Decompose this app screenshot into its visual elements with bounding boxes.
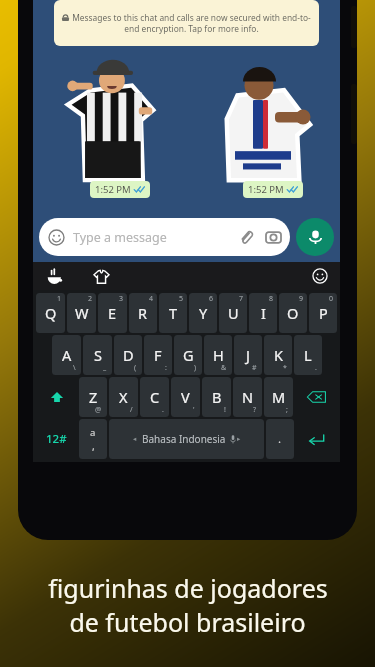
staticText: Y — [199, 303, 208, 323]
staticText: 1:52 PM — [248, 183, 284, 196]
button[interactable]: Enter — [296, 419, 337, 459]
staticText: 1:52 PM — [95, 183, 131, 196]
button[interactable]: S — [83, 335, 112, 375]
staticText: G — [183, 345, 194, 365]
staticText: / — [130, 405, 133, 415]
button[interactable]: W — [67, 293, 96, 333]
staticText: 6 — [209, 294, 214, 304]
staticText: I — [261, 303, 266, 323]
staticText: T — [169, 303, 178, 323]
button[interactable]: M — [264, 377, 293, 417]
staticText: a — [90, 426, 96, 439]
button[interactable]: a — [79, 419, 107, 459]
button[interactable]: I — [249, 293, 277, 333]
staticText: M — [272, 387, 286, 407]
staticText: @ — [95, 405, 102, 415]
button[interactable]: G — [174, 335, 202, 375]
button[interactable]: H — [204, 335, 232, 375]
button[interactable]: C — [140, 377, 169, 417]
staticText: H — [213, 345, 224, 365]
staticText: ! — [224, 405, 226, 415]
staticText: ? — [253, 405, 257, 415]
staticText: 3 — [119, 294, 124, 304]
button[interactable]: U — [219, 293, 247, 333]
staticText: : — [165, 363, 167, 373]
staticText: 2 — [88, 294, 93, 304]
staticText: & — [221, 363, 227, 373]
button[interactable]: Type a message — [39, 218, 290, 256]
button[interactable]: . — [266, 419, 294, 459]
staticText: X — [119, 387, 128, 407]
button[interactable]: F — [144, 335, 172, 375]
staticText: L — [304, 345, 312, 365]
staticText: K — [274, 345, 283, 365]
staticText: ; — [286, 405, 288, 415]
staticText: ( — [134, 363, 137, 373]
staticText: Q — [45, 303, 57, 323]
button[interactable]: Recent stickers — [33, 262, 77, 290]
staticText: J — [246, 345, 250, 365]
button[interactable]: B — [202, 377, 231, 417]
staticText: S — [94, 345, 102, 365]
staticText: C — [150, 387, 160, 407]
button[interactable]: P — [309, 293, 337, 333]
staticText: # — [252, 363, 257, 373]
staticText: O — [287, 303, 299, 323]
button[interactable]: A — [52, 335, 81, 375]
staticText: 9 — [299, 294, 304, 304]
staticText: N — [242, 387, 254, 407]
staticText: R — [138, 303, 148, 323]
button[interactable]: V — [171, 377, 200, 417]
staticText: de futebol brasileiro — [69, 605, 306, 639]
staticText: 1 — [57, 294, 62, 304]
staticText: D — [123, 345, 134, 365]
button[interactable]: D — [114, 335, 142, 375]
button[interactable]: Shift — [36, 377, 77, 417]
button[interactable]: Voice message — [296, 218, 334, 256]
staticText: Type a message — [73, 229, 167, 246]
button[interactable]: Emoji — [300, 262, 340, 290]
button[interactable]: K — [264, 335, 292, 375]
staticText: Messages to this chat and calls are now … — [72, 12, 311, 34]
button[interactable]: 12# — [36, 419, 77, 459]
staticText: F — [154, 345, 162, 365]
button[interactable]: Backspace — [295, 377, 337, 417]
staticText: B — [212, 387, 222, 407]
button[interactable]: E — [98, 293, 127, 333]
button[interactable]: Q — [36, 293, 65, 333]
other: Camera — [266, 230, 281, 245]
staticText: V — [181, 387, 190, 407]
staticText: ◂ — [133, 435, 137, 443]
staticText: 8 — [269, 294, 274, 304]
staticText: 7 — [239, 294, 244, 304]
button[interactable]: Y — [189, 293, 217, 333]
staticText: 4 — [149, 294, 154, 304]
button[interactable]: Sticker pack — [77, 262, 125, 290]
staticText: . — [162, 405, 164, 415]
staticText: W — [75, 303, 89, 323]
staticText: figurinhas de jogadores — [48, 571, 328, 605]
staticText: * — [283, 363, 287, 373]
staticText: . — [315, 363, 317, 373]
button[interactable]: Messages to this chat and calls are now … — [54, 0, 319, 46]
staticText: . — [278, 431, 282, 447]
staticText: Bahasa Indonesia — [142, 432, 226, 446]
button[interactable]: X — [109, 377, 138, 417]
button[interactable]: J — [234, 335, 262, 375]
staticText: A — [62, 345, 72, 365]
button[interactable]: Z — [79, 377, 107, 417]
staticText: 12# — [46, 431, 67, 447]
button[interactable]: T — [159, 293, 187, 333]
staticText: E — [108, 303, 117, 323]
staticText: P — [319, 303, 328, 323]
button[interactable]: ◂ — [109, 419, 264, 459]
button[interactable]: L — [294, 335, 322, 375]
button[interactable]: O — [279, 293, 307, 333]
staticText: Z — [89, 387, 98, 407]
staticText: ' — [193, 405, 195, 415]
staticText: U — [228, 303, 239, 323]
staticText: ▸ — [237, 435, 241, 443]
button[interactable]: R — [129, 293, 157, 333]
staticText: 0 — [329, 294, 334, 304]
button[interactable]: N — [233, 377, 262, 417]
